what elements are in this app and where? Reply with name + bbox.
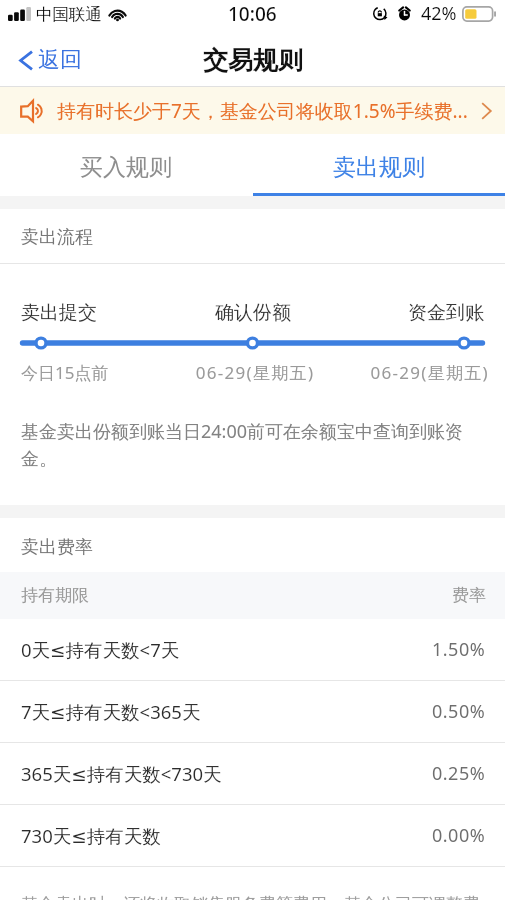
staticText: 1.50%	[432, 637, 486, 662]
button[interactable]: 7天≤持有天数<365天	[0, 681, 505, 742]
staticText: 卖出提交	[21, 301, 176, 325]
button[interactable]: 卖出规则	[252, 134, 505, 196]
staticText: 今日15点前	[21, 361, 174, 384]
button[interactable]: 365天≤持有天数<730天	[0, 743, 505, 804]
staticText: 7天≤持有天数<365天	[21, 699, 201, 724]
staticText: 持有期限	[21, 585, 89, 606]
other: Rotation lock	[372, 6, 389, 21]
staticText: 基金卖出份额到账当日24:00前可在余额宝中查询到账资金。	[21, 419, 484, 471]
staticText: 06-29(星期五)	[174, 361, 336, 384]
staticText: 10:06	[228, 1, 277, 27]
staticText: 0天≤持有天数<7天	[21, 637, 180, 662]
staticText: 卖出费率	[21, 536, 93, 559]
staticText: 0.25%	[432, 761, 486, 786]
staticText: 基金卖出时，还将收取销售服务费等费用，基金公司可调整费率。	[21, 894, 484, 900]
button[interactable]: 返回	[0, 38, 96, 82]
staticText: 持有时长少于7天，基金公司将收取1.5%手续费...	[57, 98, 475, 124]
staticText: 0.50%	[432, 699, 486, 724]
staticText: 费率	[452, 585, 486, 606]
staticText: 730天≤持有天数	[21, 823, 161, 848]
staticText: 42%	[421, 1, 457, 26]
button[interactable]: 买入规则	[0, 134, 252, 196]
button[interactable]: 0天≤持有天数<7天	[0, 619, 505, 680]
staticText: 卖出规则	[333, 153, 425, 182]
button[interactable]: 持有时长少于7天，基金公司将收取1.5%手续费...	[0, 87, 505, 134]
staticText: 资金到账	[330, 301, 484, 325]
staticText: 卖出流程	[21, 226, 93, 249]
staticText: 06-29(星期五)	[336, 361, 489, 384]
staticText: 0.00%	[432, 823, 486, 848]
staticText: 365天≤持有天数<730天	[21, 761, 222, 786]
staticText: 返回	[38, 46, 82, 74]
staticText: 中国联通	[36, 4, 102, 25]
staticText: 买入规则	[80, 153, 172, 182]
button[interactable]: 730天≤持有天数	[0, 805, 505, 866]
other: Alarm	[397, 6, 412, 21]
staticText: 确认份额	[176, 301, 330, 325]
staticText: 交易规则	[203, 45, 303, 76]
